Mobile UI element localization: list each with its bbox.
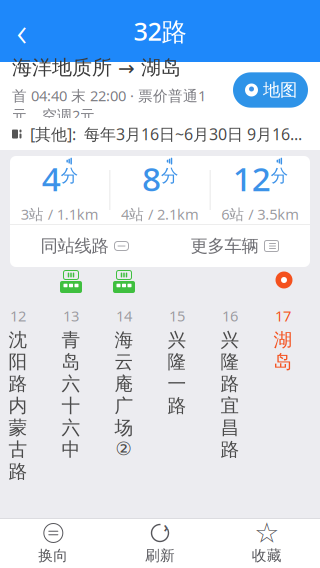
- staticText: 隆: [167, 350, 186, 373]
- staticText: 海洋地质所 → 湖岛: [12, 55, 181, 80]
- staticText: 4站 / 2.1km: [121, 204, 199, 224]
- staticText: 庵: [114, 372, 133, 395]
- button[interactable]: 12: [1, 306, 35, 486]
- staticText: 16: [222, 306, 238, 325]
- staticText: 蒙: [8, 416, 27, 439]
- staticText: 兴: [220, 328, 239, 351]
- staticText: 收藏: [252, 546, 282, 564]
- staticText: 古: [8, 438, 27, 461]
- staticText: 十: [61, 394, 80, 417]
- button[interactable]: 15: [160, 306, 194, 456]
- staticText: 分: [61, 165, 78, 186]
- staticText: 路: [8, 460, 27, 483]
- staticText: 昌: [220, 416, 239, 439]
- staticText: 路: [8, 372, 27, 395]
- button[interactable]: 13: [54, 306, 88, 464]
- button[interactable]: 16: [213, 306, 247, 464]
- staticText: 内: [8, 394, 27, 417]
- staticText: 岛: [61, 350, 80, 373]
- staticText: ②: [115, 438, 132, 459]
- button[interactable]: 14: [107, 306, 141, 462]
- staticText: 17: [275, 306, 291, 325]
- staticText: ☆: [254, 517, 279, 549]
- staticText: 一: [167, 372, 186, 395]
- staticText: ›: [280, 299, 285, 319]
- staticText: 青: [61, 328, 80, 351]
- staticText: 分: [271, 165, 288, 186]
- staticText: 六: [61, 416, 80, 439]
- staticText: 更多车辆: [190, 235, 258, 257]
- staticText: 12: [10, 306, 26, 325]
- staticText: 换向: [38, 546, 68, 564]
- staticText: 阳: [8, 350, 27, 373]
- staticText: 路: [220, 372, 239, 395]
- button[interactable]: 换向: [0, 519, 107, 568]
- button[interactable]: 17: [266, 306, 300, 456]
- staticText: 15: [169, 306, 185, 325]
- button[interactable]: ☆: [213, 519, 320, 568]
- staticText: 云: [114, 350, 133, 373]
- staticText: 沈: [8, 328, 27, 351]
- staticText: 中: [61, 438, 80, 461]
- staticText: 首 04:40 末 22:00 · 票价普通1元，空调2元: [12, 86, 206, 125]
- button[interactable]: ›: [107, 519, 213, 568]
- staticText: 路: [167, 394, 186, 417]
- staticText: 6站 / 3.5km: [221, 204, 299, 224]
- staticText: 8: [142, 156, 161, 200]
- staticText: 湖: [273, 328, 292, 351]
- staticText: 兴: [167, 328, 186, 351]
- button[interactable]: 更多车辆: [160, 225, 310, 267]
- staticText: 分: [161, 165, 178, 186]
- staticText: 海: [114, 328, 133, 351]
- staticText: 同站线路: [40, 235, 108, 257]
- staticText: 路: [220, 438, 239, 461]
- staticText: 宜: [220, 394, 239, 417]
- staticText: 14: [116, 306, 132, 325]
- button[interactable]: Back: [0, 9, 44, 53]
- staticText: 32路: [133, 14, 186, 48]
- staticText: [其他]: 每年3月16日~6月30日 9月16日~11月30日为…: [30, 123, 304, 145]
- staticText: 4: [42, 156, 61, 200]
- staticText: ‹: [16, 4, 27, 57]
- staticText: ›: [163, 518, 168, 536]
- staticText: 六: [61, 372, 80, 395]
- button[interactable]: 同站线路: [10, 225, 160, 267]
- staticText: 岛: [273, 350, 292, 373]
- staticText: 12: [233, 156, 271, 200]
- staticText: 刷新: [145, 546, 175, 564]
- staticText: 隆: [220, 350, 239, 373]
- staticText: 广: [114, 394, 133, 417]
- staticText: 地图: [263, 79, 297, 101]
- button[interactable]: [其他]: 每年3月16日~6月30日 9月16日~11月30日为…: [0, 118, 320, 150]
- staticText: 13: [63, 306, 79, 325]
- staticText: 3站 / 1.1km: [21, 204, 99, 224]
- staticText: 场: [114, 416, 133, 439]
- button[interactable]: 地图: [233, 72, 308, 108]
